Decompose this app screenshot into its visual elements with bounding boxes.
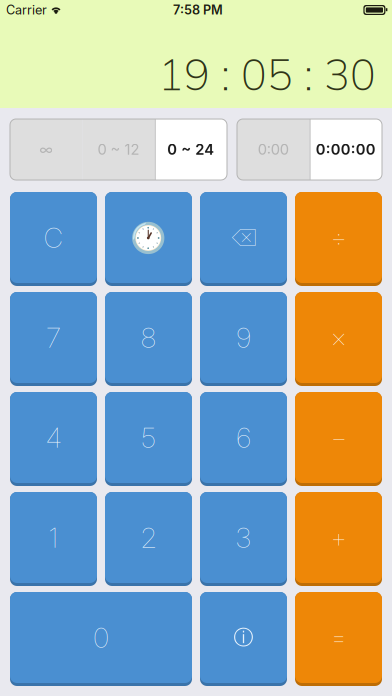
staticText: 0:00 [258,141,289,158]
button[interactable]: 2 [105,492,192,586]
staticText: − [330,421,346,454]
button[interactable]: 0 ~ 12 [82,119,155,180]
staticText: 7:58 PM [173,2,223,18]
button[interactable]: 6 [200,392,287,486]
button[interactable]: ∞ [10,119,82,180]
staticText: ⓘ [233,625,253,650]
staticText: 🕐 [130,220,167,255]
button[interactable]: ⌫ [200,192,287,286]
button[interactable]: 0:00 [237,119,309,180]
staticText: 3 [235,521,251,554]
staticText: × [330,321,346,354]
staticText: 2 [140,521,156,554]
button[interactable]: 8 [105,292,192,386]
staticText: Carrier [6,2,47,18]
staticText: 0 [93,621,109,654]
button[interactable]: 0:00:00 [309,119,382,180]
button[interactable]: ⓘ [200,592,287,686]
staticText: 1 [48,521,58,554]
button[interactable]: 1 [10,492,97,586]
button[interactable]: = [295,592,382,686]
staticText: 8 [140,321,156,354]
button[interactable]: + [295,492,382,586]
staticText: ∞ [39,141,53,158]
button[interactable]: 5 [105,392,192,486]
button[interactable]: 3 [200,492,287,586]
button[interactable]: 7 [10,292,97,386]
staticText: ÷ [330,221,346,254]
button[interactable]: × [295,292,382,386]
staticText: 0 ~ 12 [97,141,139,158]
staticText: C [43,221,63,254]
button[interactable]: 🕐 [105,192,192,286]
staticText: 7 [46,321,61,354]
staticText: + [330,521,346,554]
staticText: 4 [45,421,61,454]
staticText: 9 [236,321,251,354]
button[interactable]: − [295,392,382,486]
staticText: = [330,621,346,654]
button[interactable]: ÷ [295,192,382,286]
button[interactable]: 0 ~ 24 [155,119,227,180]
button[interactable]: 0 [10,592,192,686]
staticText: 0:00:00 [316,141,376,158]
staticText: ⌫ [230,224,257,251]
button[interactable]: 4 [10,392,97,486]
staticText: 6 [236,421,251,454]
staticText: 19 : 05 : 30 [158,47,376,101]
staticText: 5 [141,421,156,454]
button[interactable]: 9 [200,292,287,386]
button[interactable]: C [10,192,97,286]
staticText: 0 ~ 24 [167,141,214,158]
